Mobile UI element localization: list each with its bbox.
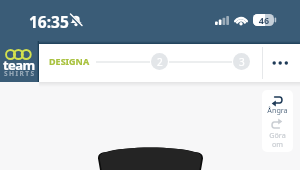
button[interactable]: 3 <box>233 53 250 70</box>
button[interactable]: 2 <box>151 53 168 70</box>
staticText: 2 <box>157 55 163 69</box>
button[interactable]: More options <box>263 44 300 82</box>
button[interactable]: TeamShirts home <box>0 0 39 82</box>
button[interactable]: Göra om <box>262 120 293 152</box>
staticText: team <box>3 56 43 74</box>
staticText: Ångra <box>262 105 293 115</box>
staticText: 16:35 <box>29 11 79 32</box>
staticText: 3 <box>239 55 245 69</box>
staticText: 46 <box>256 14 272 26</box>
staticText: DESIGNA <box>49 55 109 67</box>
staticText: Göra om <box>262 130 293 149</box>
button[interactable]: Ångra <box>262 90 293 120</box>
staticText: SHIRTS <box>4 69 44 78</box>
